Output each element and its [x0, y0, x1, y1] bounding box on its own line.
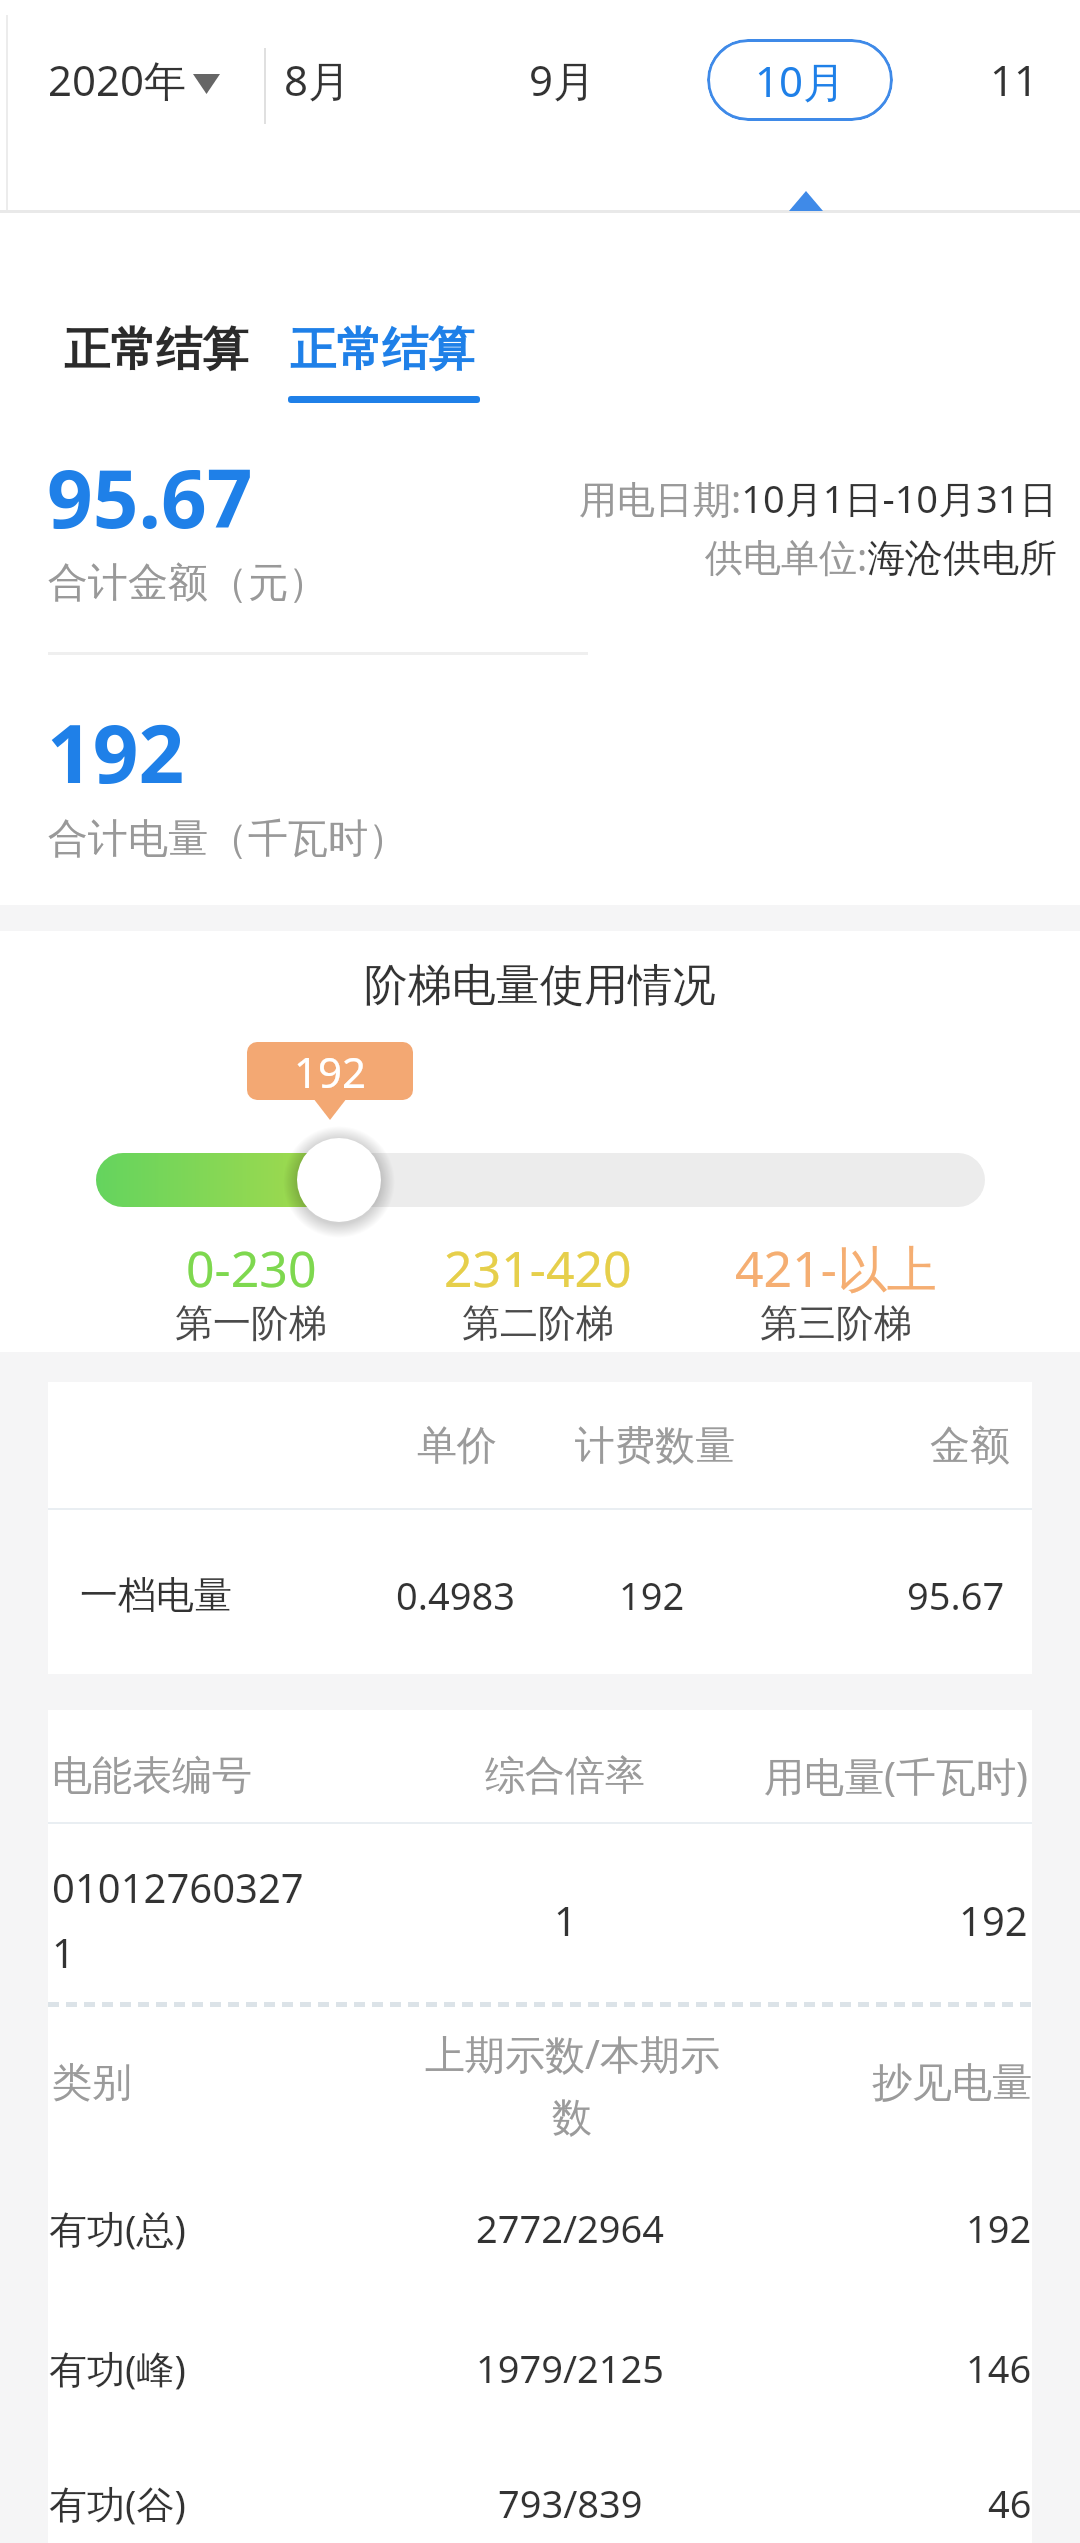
staticText: 用电量(千瓦时) — [764, 1748, 1028, 1803]
staticText: 192 — [966, 2202, 1032, 2254]
staticText: 正常结算 — [290, 321, 474, 379]
staticText: 192 — [47, 697, 185, 806]
staticText: 11 — [990, 51, 1039, 108]
staticText: 上期示数/本期示 — [425, 2026, 720, 2081]
staticText: 9月 — [529, 51, 596, 108]
staticText: 0.4983 — [396, 1569, 515, 1621]
staticText: 192 — [959, 1893, 1028, 1947]
staticText: 合计电量（千瓦时） — [48, 813, 408, 863]
staticText: 192 — [619, 1569, 685, 1621]
staticText: 01012760327 — [52, 1860, 304, 1914]
button[interactable]: 正常结算 — [290, 310, 490, 390]
staticText: 95.67 — [907, 1569, 1005, 1621]
staticText: 第一阶梯 — [175, 1299, 327, 1347]
button[interactable]: 10月 — [707, 39, 893, 121]
staticText: 类别 — [52, 2057, 132, 2107]
staticText: 第三阶梯 — [760, 1299, 912, 1347]
staticText: 1 — [52, 1925, 75, 1979]
staticText: 146 — [966, 2342, 1032, 2394]
staticText: 2020年 — [48, 51, 187, 108]
staticText: 合计金额（元） — [48, 557, 328, 607]
staticText: 10月 — [755, 52, 846, 109]
staticText: 2772/2964 — [476, 2202, 665, 2254]
staticText: 0-230 — [186, 1234, 317, 1302]
staticText: 421-以上 — [735, 1234, 937, 1302]
button[interactable]: 11 — [990, 39, 1080, 119]
staticText: 8月 — [284, 51, 351, 108]
staticText: 192 — [294, 1043, 367, 1100]
staticText: 有功(总) — [49, 2202, 186, 2254]
button[interactable]: 9月 — [500, 39, 624, 119]
staticText: 1979/2125 — [476, 2342, 665, 2394]
button[interactable]: 2020年 — [48, 39, 198, 119]
staticText: 95.67 — [47, 442, 253, 551]
staticText: 供电单位:海沧供电所 — [705, 530, 1058, 582]
staticText: 金额 — [930, 1420, 1010, 1470]
staticText: 231-420 — [444, 1234, 632, 1302]
staticText: 抄见电量 — [872, 2057, 1032, 2107]
staticText: 有功(谷) — [49, 2477, 186, 2529]
staticText: 1 — [554, 1893, 577, 1947]
staticText: 正常结算 — [64, 321, 248, 379]
staticText: 数 — [552, 2092, 592, 2142]
staticText: 一档电量 — [80, 1571, 232, 1619]
button[interactable]: 8月 — [255, 39, 379, 119]
button[interactable] — [297, 1138, 381, 1222]
staticText: 用电日期:10月1日-10月31日 — [579, 472, 1058, 524]
staticText: 有功(峰) — [49, 2342, 186, 2394]
staticText: 46 — [988, 2477, 1032, 2529]
staticText: 电能表编号 — [52, 1750, 252, 1800]
button[interactable]: 正常结算 — [64, 310, 264, 390]
staticText: 计费数量 — [575, 1420, 735, 1470]
staticText: 793/839 — [498, 2477, 643, 2529]
staticText: 综合倍率 — [485, 1750, 645, 1800]
staticText: 阶梯电量使用情况 — [364, 958, 716, 1013]
staticText: 单价 — [417, 1420, 497, 1470]
staticText: 第二阶梯 — [462, 1299, 614, 1347]
